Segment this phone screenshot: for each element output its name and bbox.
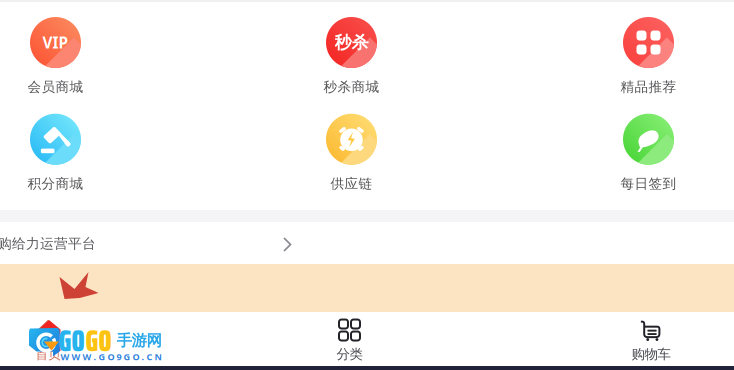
staticText: 首页 (35, 346, 61, 363)
staticText: 精品推荐 (620, 78, 676, 95)
button[interactable]: 每日签到 (583, 113, 713, 207)
button[interactable]: 精品推荐 (583, 16, 713, 110)
staticText: VIP (42, 32, 68, 53)
staticText: 会员商城 (27, 78, 83, 95)
staticText: 手游网 (116, 331, 161, 350)
button[interactable]: 供应链 (286, 113, 416, 207)
staticText: 供应链 (330, 175, 372, 192)
staticText: 分类 (336, 346, 362, 363)
staticText: 购物车 (631, 346, 670, 363)
staticText: 每日签到 (620, 175, 676, 192)
staticText: GO (85, 316, 111, 365)
button[interactable]: 购给力运营平台 (0, 222, 734, 264)
staticText: 秒杀商城 (323, 78, 379, 95)
staticText: 积分商城 (27, 175, 83, 192)
staticText: GO (58, 316, 84, 365)
button[interactable]: 首页 (0, 314, 113, 366)
staticText: 购给力运营平台 (0, 235, 96, 252)
staticText: W W W . G O 9 G O . C N (60, 351, 161, 363)
button[interactable]: 分类 (284, 314, 414, 366)
button[interactable]: 购物车 (586, 314, 716, 366)
button[interactable]: 秒杀 (286, 16, 416, 110)
button[interactable]: 积分商城 (0, 113, 120, 207)
staticText: 秒杀 (334, 32, 368, 53)
button[interactable]: VIP (0, 16, 120, 110)
